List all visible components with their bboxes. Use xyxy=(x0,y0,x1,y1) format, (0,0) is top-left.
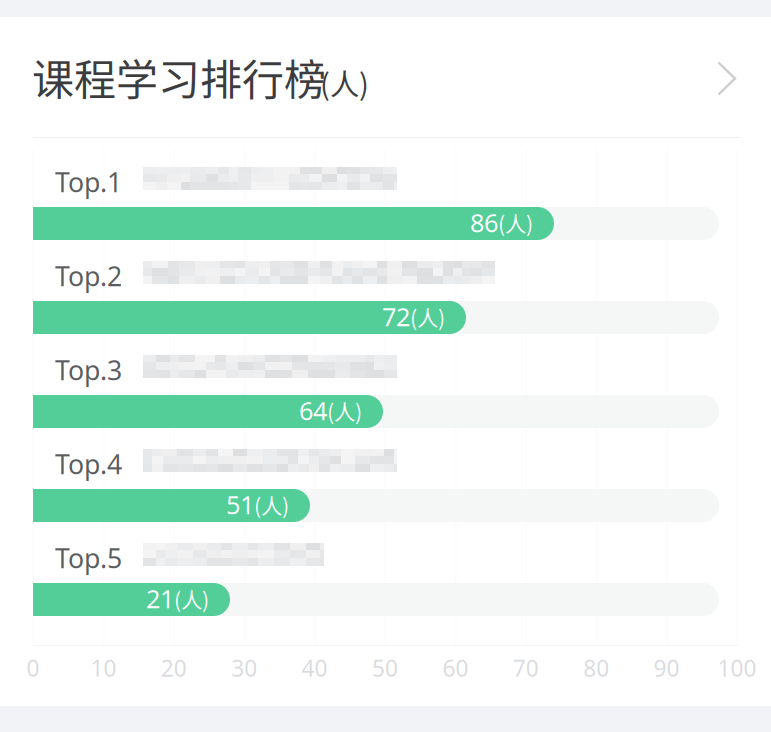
staticText: (人) xyxy=(327,396,362,426)
staticText: 80 xyxy=(583,653,609,683)
staticText: (人) xyxy=(254,490,289,520)
staticText: (人) xyxy=(498,208,533,238)
staticText: Top.5 xyxy=(55,540,122,576)
staticText: 30 xyxy=(231,653,257,683)
staticText: 50 xyxy=(372,653,398,683)
staticText: 60 xyxy=(442,653,468,683)
staticText: (人) xyxy=(320,61,369,104)
staticText: Top.3 xyxy=(55,352,122,388)
staticText: 72 xyxy=(382,300,410,333)
staticText: 10 xyxy=(90,653,116,683)
button[interactable]: 课程学习排行榜 xyxy=(0,17,771,137)
staticText: 51 xyxy=(226,488,254,521)
staticText: (人) xyxy=(410,302,445,332)
staticText: 64 xyxy=(299,394,327,427)
staticText: 90 xyxy=(654,653,680,683)
staticText: 100 xyxy=(717,653,756,683)
staticText: Top.4 xyxy=(55,446,122,482)
staticText: (人) xyxy=(174,584,209,614)
staticText: 40 xyxy=(302,653,328,683)
staticText: 20 xyxy=(161,653,187,683)
staticText: 课程学习排行榜 xyxy=(32,47,326,107)
staticText: 0 xyxy=(26,653,39,683)
staticText: Top.2 xyxy=(55,258,122,294)
staticText: 86 xyxy=(470,206,498,239)
staticText: Top.1 xyxy=(55,164,122,200)
staticText: 21 xyxy=(146,582,174,615)
staticText: 70 xyxy=(513,653,539,683)
